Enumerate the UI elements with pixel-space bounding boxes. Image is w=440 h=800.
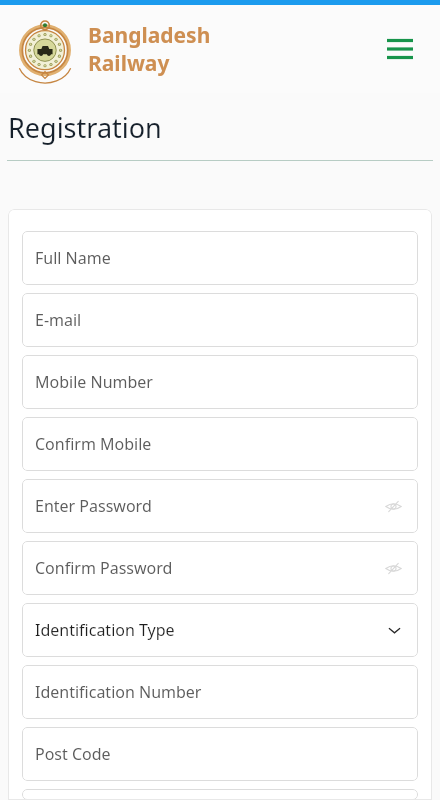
staticText: Identification Type — [35, 619, 175, 641]
staticText: Registration — [8, 109, 162, 146]
button[interactable] — [22, 789, 418, 800]
staticText: Confirm Password — [35, 557, 173, 579]
button[interactable]: Open menu — [378, 27, 422, 71]
button[interactable]: Confirm Password — [22, 541, 418, 595]
button[interactable]: Identification Number — [22, 665, 418, 719]
button[interactable]: Confirm Mobile — [22, 417, 418, 471]
button[interactable]: Full Name — [22, 231, 418, 285]
staticText: Identification Number — [35, 681, 202, 703]
staticText: Bangladesh Railway — [88, 21, 211, 77]
button[interactable]: Identification Type — [22, 603, 418, 657]
button[interactable]: E-mail — [22, 293, 418, 347]
button[interactable]: Mobile Number — [22, 355, 418, 409]
other: Toggle password visibility — [381, 556, 405, 580]
staticText: Mobile Number — [35, 371, 153, 393]
button[interactable]: Bangladesh Railway logo — [16, 20, 74, 78]
staticText: Full Name — [35, 247, 111, 269]
staticText: Post Code — [35, 743, 111, 765]
staticText: Confirm Mobile — [35, 433, 152, 455]
other: Toggle password visibility — [381, 494, 405, 518]
button[interactable]: Post Code — [22, 727, 418, 781]
button[interactable]: Enter Password — [22, 479, 418, 533]
staticText: E-mail — [35, 309, 82, 331]
staticText: Enter Password — [35, 495, 152, 517]
